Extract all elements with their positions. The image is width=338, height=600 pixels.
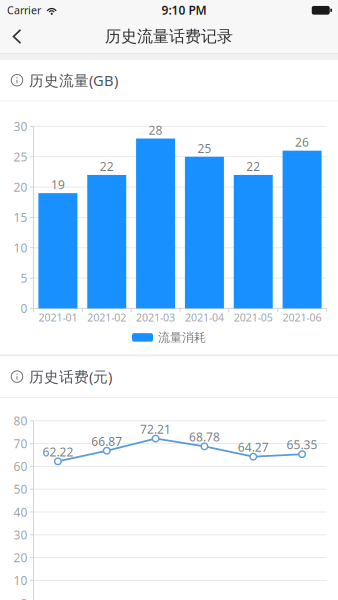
staticText: 22: [246, 158, 260, 174]
staticText: 22: [100, 158, 114, 174]
staticText: 30: [13, 118, 27, 134]
staticText: 64.27: [238, 439, 269, 455]
staticText: 2021-02: [87, 310, 126, 324]
staticText: 5: [20, 270, 27, 286]
staticText: 80: [13, 413, 27, 429]
staticText: 2021-05: [234, 310, 273, 324]
staticText: 70: [13, 436, 27, 451]
staticText: 65.35: [287, 437, 318, 453]
button[interactable]: Back: [0, 20, 34, 53]
staticText: 19: [51, 177, 65, 193]
staticText: 9:10 PM: [161, 2, 206, 18]
staticText: 15: [13, 209, 27, 225]
staticText: 0: [20, 300, 27, 316]
staticText: 62.22: [42, 444, 73, 460]
staticText: 0: [20, 595, 27, 600]
staticText: Carrier: [7, 3, 41, 17]
staticText: 2021-06: [283, 310, 322, 324]
staticText: 历史话费(元): [29, 367, 112, 386]
staticText: 历史流量(GB): [29, 70, 118, 90]
staticText: 28: [149, 122, 163, 138]
staticText: 历史流量话费记录: [105, 27, 233, 46]
staticText: 10: [13, 572, 27, 588]
staticText: 2021-04: [185, 310, 224, 324]
staticText: 50: [13, 481, 27, 497]
staticText: 20: [13, 550, 27, 565]
staticText: 26: [295, 134, 309, 150]
staticText: 68.78: [189, 429, 220, 445]
staticText: 2021-01: [38, 310, 77, 324]
staticText: 66.87: [91, 433, 122, 449]
staticText: 25: [197, 140, 211, 156]
staticText: 流量消耗: [158, 330, 206, 345]
staticText: 2021-03: [136, 310, 175, 324]
staticText: 72.21: [140, 421, 171, 437]
staticText: 60: [13, 458, 27, 474]
staticText: 30: [13, 527, 27, 543]
staticText: 20: [13, 179, 27, 195]
staticText: 10: [13, 240, 27, 256]
staticText: 40: [13, 504, 27, 520]
staticText: 25: [13, 149, 27, 165]
